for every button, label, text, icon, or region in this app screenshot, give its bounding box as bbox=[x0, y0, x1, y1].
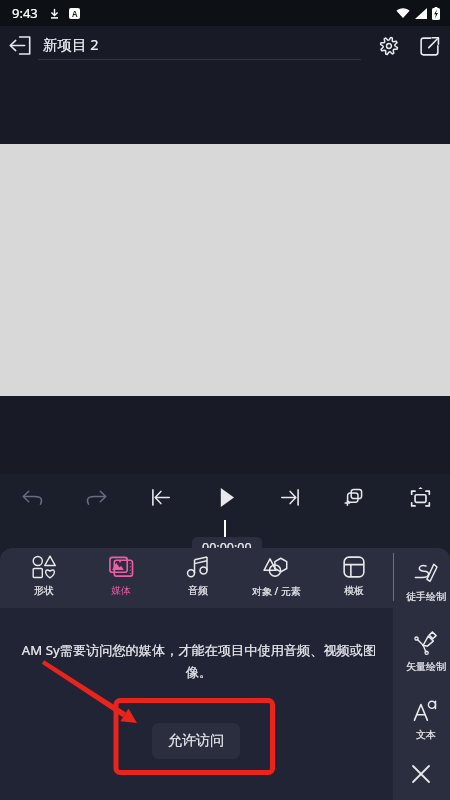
button[interactable]: 对象 / 元素 bbox=[237, 548, 315, 608]
staticText: 对象 / 元素 bbox=[252, 584, 301, 598]
button[interactable]: 模板 bbox=[315, 548, 393, 608]
button[interactable]: 音频 bbox=[159, 548, 237, 608]
staticText: 文本 bbox=[416, 728, 436, 741]
button[interactable]: Skip to start bbox=[144, 481, 176, 513]
button[interactable]: Settings bbox=[375, 32, 403, 60]
staticText: 允许访问 bbox=[168, 732, 224, 750]
button[interactable]: 文本 bbox=[401, 699, 450, 741]
button[interactable]: 新项目 2 bbox=[43, 31, 366, 60]
button[interactable]: Close bbox=[409, 762, 433, 786]
button[interactable]: Undo bbox=[16, 481, 48, 513]
button[interactable]: Duplicate bbox=[338, 481, 370, 513]
staticText: 音频 bbox=[188, 584, 208, 597]
staticText: 9:43 bbox=[12, 4, 38, 22]
button[interactable]: Redo bbox=[80, 481, 112, 513]
staticText: 00:00:00 bbox=[202, 539, 252, 556]
button[interactable]: Fit to screen bbox=[404, 481, 436, 513]
staticText: 形状 bbox=[34, 584, 54, 597]
staticText: AM Sy需要访问您的媒体，才能在项目中使用音频、视频或图像。 bbox=[17, 641, 381, 681]
staticText: 媒体 bbox=[111, 584, 131, 597]
staticText: 模板 bbox=[344, 584, 364, 597]
button[interactable]: Back bbox=[4, 29, 37, 62]
button[interactable]: 矢量绘制 bbox=[401, 631, 450, 673]
button[interactable]: Export bbox=[415, 32, 443, 60]
staticText: 徒手绘制 bbox=[406, 590, 446, 603]
button[interactable]: Skip to end bbox=[274, 481, 306, 513]
button[interactable]: 形状 bbox=[5, 548, 82, 608]
button[interactable]: 媒体 bbox=[82, 548, 159, 608]
staticText: A bbox=[72, 8, 78, 19]
button[interactable]: 徒手绘制 bbox=[401, 561, 450, 603]
staticText: 矢量绘制 bbox=[406, 660, 446, 673]
button[interactable]: Play bbox=[210, 481, 242, 513]
staticText: 新项目 2 bbox=[43, 34, 99, 54]
button[interactable]: 允许访问 bbox=[152, 723, 240, 759]
